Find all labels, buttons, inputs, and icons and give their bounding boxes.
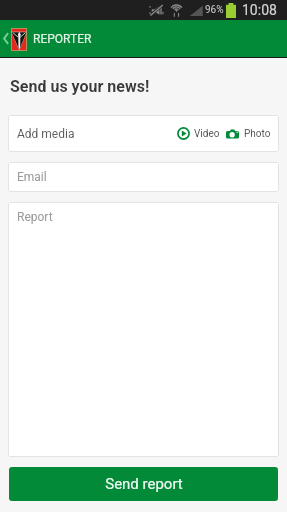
staticText: Add media [17,127,75,141]
other: Sound off [149,3,164,17]
staticText: Photo [244,128,271,140]
other: Signal [189,3,203,17]
staticText: Report [17,210,53,224]
button[interactable]: Send report [9,467,278,501]
staticText: 10:08 [242,2,277,18]
button[interactable]: Email [8,162,279,192]
staticText: Send us your news! [10,77,150,96]
button[interactable]: Report [8,202,279,457]
staticText: Video [194,128,220,140]
staticText: Email [17,170,47,184]
staticText: Send report [105,475,183,493]
button[interactable]: Back [0,20,11,57]
staticText: 96% [205,4,224,16]
other: Wi-Fi [170,3,183,17]
staticText: REPORTER [33,32,92,46]
button[interactable]: Photo [226,128,271,140]
button[interactable]: Video [177,127,220,140]
other: Battery 96 percent [226,3,236,18]
